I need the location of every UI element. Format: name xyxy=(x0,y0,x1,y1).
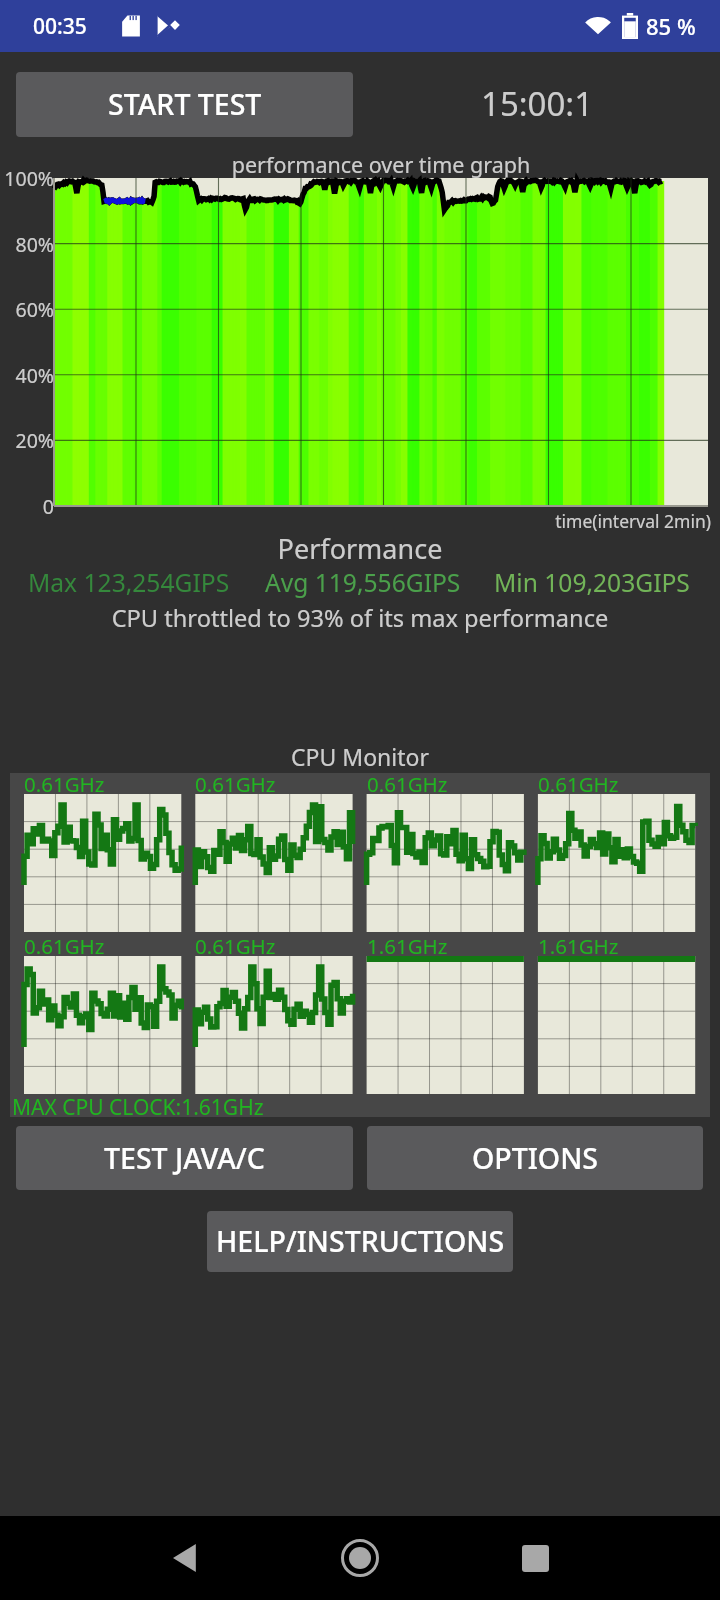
staticText: OPTIONS xyxy=(472,1139,598,1178)
staticText: START TEST xyxy=(108,85,262,124)
button[interactable]: HELP/INSTRUCTIONS xyxy=(207,1211,513,1272)
staticText: 60% xyxy=(0,296,54,323)
staticText: 0 xyxy=(0,493,54,520)
staticText: MAX CPU CLOCK:1.61GHz xyxy=(12,1093,264,1122)
staticText: 40% xyxy=(0,362,54,389)
staticText: TEST JAVA/C xyxy=(104,1139,265,1178)
staticText: 0.61GHz xyxy=(538,770,619,798)
button[interactable]: Home xyxy=(325,1523,395,1593)
staticText: time(interval 2min) xyxy=(0,509,711,533)
staticText: 80% xyxy=(0,231,54,258)
staticText: 100% xyxy=(0,165,54,192)
staticText: 0.61GHz xyxy=(195,770,276,798)
staticText: 20% xyxy=(0,427,54,454)
button[interactable]: Back xyxy=(150,1523,220,1593)
staticText: HELP/INSTRUCTIONS xyxy=(216,1222,505,1261)
button[interactable]: Recents xyxy=(500,1523,570,1593)
staticText: 0.61GHz xyxy=(24,932,105,960)
staticText: Min 109,203GIPS xyxy=(494,566,690,600)
staticText: CPU Monitor xyxy=(0,741,720,772)
staticText: 0.61GHz xyxy=(195,932,276,960)
staticText: Max 123,254GIPS xyxy=(28,566,230,600)
staticText: performance over time graph xyxy=(54,150,708,179)
staticText: Performance xyxy=(0,530,720,567)
staticText: CPU throttled to 93% of its max performa… xyxy=(0,602,720,634)
staticText: Avg 119,556GIPS xyxy=(265,566,461,600)
staticText: 85 % xyxy=(646,11,696,41)
button[interactable]: OPTIONS xyxy=(367,1126,703,1190)
staticText: 0.61GHz xyxy=(24,770,105,798)
staticText: 0.61GHz xyxy=(367,770,448,798)
button[interactable]: START TEST xyxy=(16,72,353,137)
button[interactable]: TEST JAVA/C xyxy=(16,1126,353,1190)
staticText: 1.61GHz xyxy=(538,932,619,960)
staticText: 1.61GHz xyxy=(367,932,448,960)
staticText: 15:00:1 xyxy=(481,81,594,126)
staticText: 00:35 xyxy=(33,12,87,41)
